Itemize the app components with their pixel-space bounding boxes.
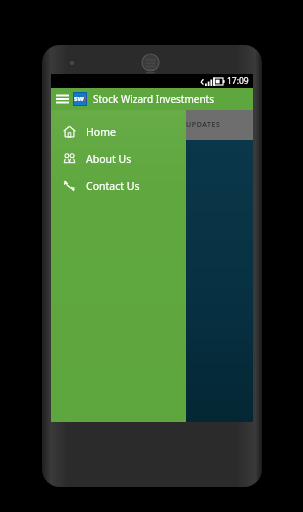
staticText: 17:09 bbox=[227, 75, 249, 87]
staticText: i bbox=[84, 94, 87, 104]
staticText: Stock Wizard Investments bbox=[93, 92, 215, 106]
button[interactable]: Home bbox=[51, 118, 186, 145]
staticText: sw bbox=[74, 94, 84, 104]
button[interactable]: UPDATES bbox=[186, 110, 221, 140]
staticText: Contact Us bbox=[86, 179, 140, 193]
button[interactable]: About Us bbox=[51, 145, 186, 172]
button[interactable]: Contact Us bbox=[51, 172, 186, 199]
button[interactable]: Open navigation drawer bbox=[51, 88, 73, 110]
staticText: UPDATES bbox=[186, 120, 221, 130]
staticText: About Us bbox=[86, 152, 132, 166]
staticText: Home bbox=[86, 125, 116, 139]
button[interactable]: Stock Wizard logo bbox=[73, 92, 87, 106]
